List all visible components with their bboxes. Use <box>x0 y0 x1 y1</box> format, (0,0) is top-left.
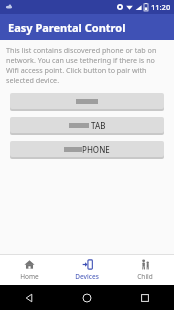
staticText: Devices <box>75 272 99 281</box>
staticText: Child <box>137 272 153 281</box>
button[interactable]: PHONE <box>10 141 164 157</box>
staticText: Home <box>20 272 39 281</box>
staticText: Easy Parental Control <box>8 20 126 35</box>
button[interactable]: Back <box>0 285 58 310</box>
staticText: 11:20 <box>151 2 171 12</box>
button[interactable]: Devices <box>58 255 116 285</box>
button[interactable]: Child <box>116 255 174 285</box>
button[interactable]: TAB <box>10 117 164 133</box>
button[interactable] <box>10 93 164 109</box>
staticText: PHONE <box>82 144 110 155</box>
button[interactable]: Home <box>0 255 58 285</box>
staticText: TAB <box>89 120 106 131</box>
button[interactable]: Recent apps <box>116 285 174 310</box>
staticText: This list contains discovered phone or t… <box>6 45 168 85</box>
button[interactable]: Home <box>58 285 116 310</box>
